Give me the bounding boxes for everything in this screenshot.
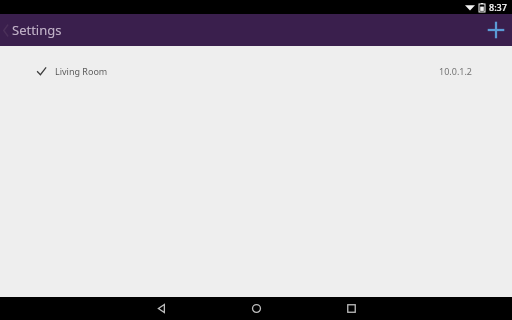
button[interactable]: Add device: [480, 14, 512, 46]
staticText: Living Room: [55, 65, 108, 77]
button[interactable]: Back: [114, 297, 209, 320]
button[interactable]: Living Room: [0, 58, 512, 84]
button[interactable]: Back: [0, 14, 10, 46]
staticText: Settings: [12, 21, 62, 39]
button[interactable]: Home: [209, 297, 304, 320]
staticText: 10.0.1.2: [439, 65, 472, 77]
staticText: 8:37: [489, 1, 507, 13]
button[interactable]: Recent apps: [304, 297, 399, 320]
